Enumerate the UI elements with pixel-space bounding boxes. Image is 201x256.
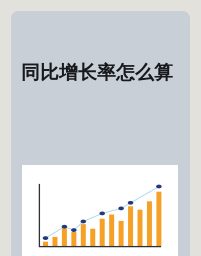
- staticText: 同比增长率怎么算: [21, 61, 173, 84]
